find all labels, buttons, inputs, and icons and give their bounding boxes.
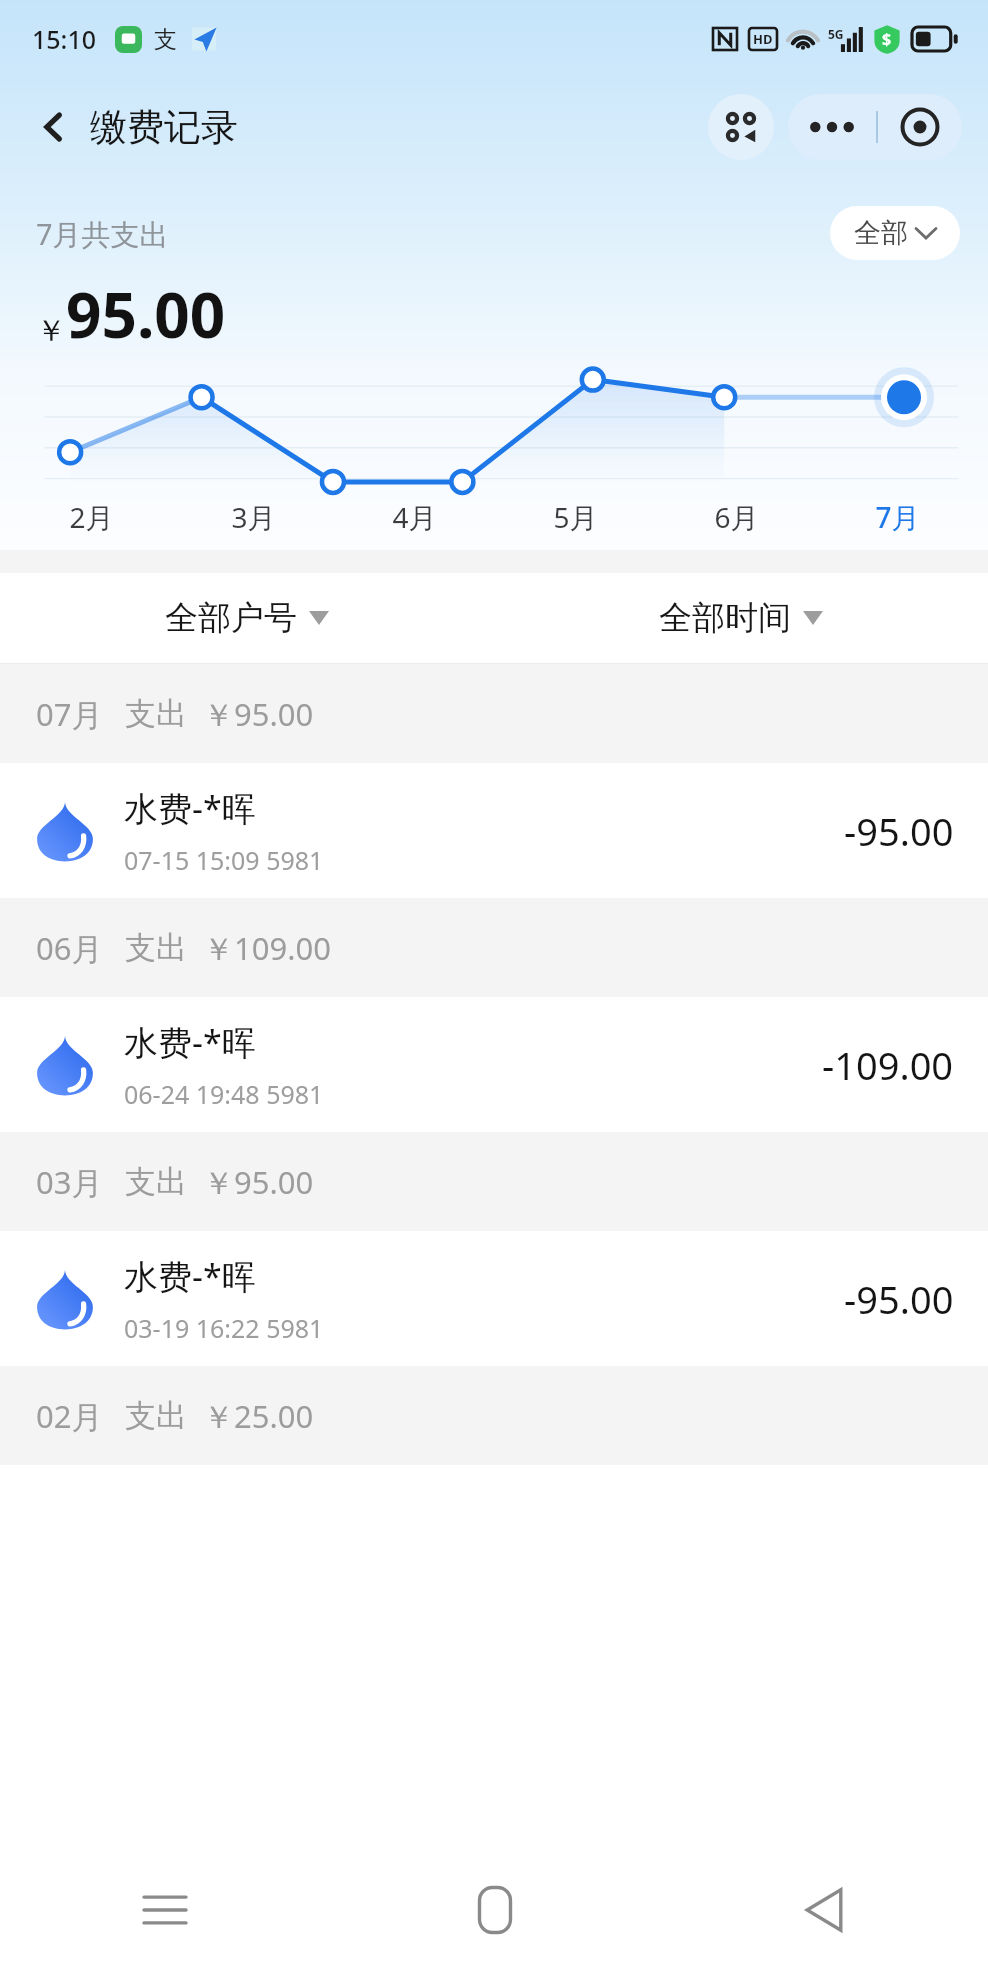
- staticText: -95.00: [844, 1273, 954, 1325]
- staticText: 全部: [854, 216, 908, 250]
- staticText: 5G: [828, 26, 844, 42]
- staticText: 2月: [69, 498, 114, 536]
- staticText: 03-19 16:22 5981: [124, 1311, 324, 1345]
- button[interactable]: Close: [878, 94, 962, 160]
- staticText: 7月: [875, 498, 920, 536]
- staticText: 07-15 15:09 5981: [124, 843, 324, 877]
- button[interactable]: 5月: [495, 483, 656, 550]
- staticText: 7月共支出: [36, 214, 169, 254]
- button[interactable]: 3月: [172, 483, 334, 550]
- staticText: 水费-*晖: [124, 1253, 256, 1299]
- staticText: 支出: [125, 928, 187, 967]
- button[interactable]: 全部: [830, 206, 960, 260]
- staticText: 缴费记录: [90, 104, 238, 151]
- button[interactable]: 水费-*晖: [0, 1231, 988, 1366]
- button[interactable]: 2月: [10, 483, 172, 550]
- staticText: 3月: [231, 498, 276, 536]
- button[interactable]: 7月: [817, 483, 978, 550]
- staticText: ￥95.00: [203, 693, 314, 735]
- staticText: 03月: [36, 1161, 103, 1203]
- button[interactable]: Recent apps: [0, 1847, 330, 1972]
- button[interactable]: Back: [659, 1847, 988, 1972]
- button[interactable]: More options: [788, 94, 876, 160]
- staticText: 全部时间: [659, 597, 791, 639]
- staticText: -95.00: [844, 805, 954, 857]
- staticText: $: [882, 28, 892, 50]
- staticText: 06-24 19:48 5981: [124, 1077, 324, 1111]
- staticText: ￥25.00: [203, 1395, 314, 1437]
- button[interactable]: 全部户号: [0, 573, 494, 663]
- staticText: 支出: [125, 694, 187, 733]
- staticText: 支: [154, 25, 177, 54]
- button[interactable]: 全部时间: [494, 573, 988, 663]
- staticText: 15:10: [32, 22, 97, 56]
- staticText: 全部户号: [165, 597, 297, 639]
- staticText: ￥95.00: [203, 1161, 314, 1203]
- staticText: ￥: [36, 312, 66, 350]
- staticText: 6月: [714, 498, 759, 536]
- button[interactable]: 水费-*晖: [0, 763, 988, 898]
- staticText: ￥109.00: [203, 927, 331, 969]
- staticText: 07月: [36, 693, 103, 735]
- staticText: 水费-*晖: [124, 1019, 256, 1065]
- staticText: 支出: [125, 1162, 187, 1201]
- button[interactable]: 6月: [656, 483, 817, 550]
- staticText: 02月: [36, 1395, 103, 1437]
- staticText: 95.00: [66, 272, 226, 356]
- staticText: 水费-*晖: [124, 785, 256, 831]
- staticText: 支出: [125, 1396, 187, 1435]
- staticText: 5月: [553, 498, 598, 536]
- staticText: HD: [753, 30, 773, 48]
- staticText: -109.00: [822, 1039, 954, 1091]
- button[interactable]: Back: [26, 99, 82, 155]
- button[interactable]: Scan: [708, 94, 774, 160]
- staticText: 4月: [392, 498, 437, 536]
- button[interactable]: 水费-*晖: [0, 997, 988, 1132]
- button[interactable]: 4月: [334, 483, 495, 550]
- button[interactable]: Home: [330, 1847, 659, 1972]
- staticText: 06月: [36, 927, 103, 969]
